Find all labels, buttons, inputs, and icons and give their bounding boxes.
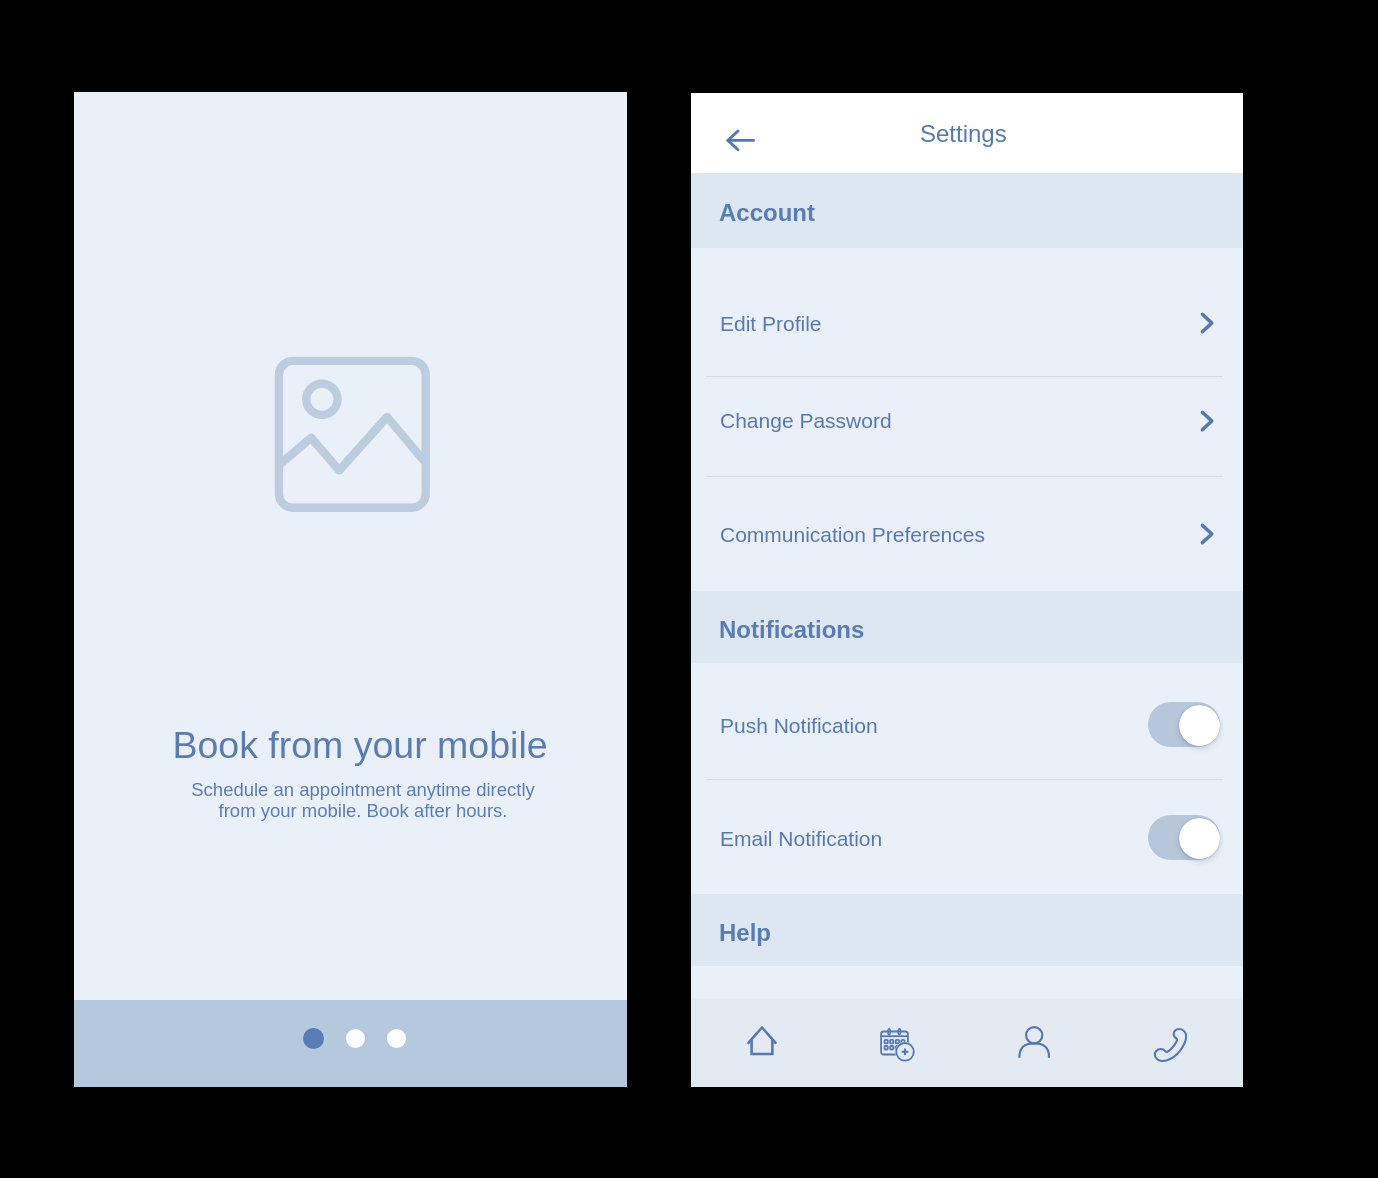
staticText: Schedule an appointment anytime directly…: [191, 779, 535, 821]
staticText: Book from your mobile: [172, 724, 548, 766]
button[interactable]: Book appointment: [829, 999, 967, 1087]
button[interactable]: Edit Profile: [691, 248, 1243, 376]
button[interactable]: Page 2: [346, 1029, 365, 1048]
staticText: Push Notification: [720, 714, 878, 737]
staticText: Edit Profile: [720, 312, 822, 335]
staticText: Account: [719, 199, 815, 226]
staticText: Notifications: [719, 616, 865, 643]
staticText: Settings: [920, 120, 1007, 147]
button[interactable]: Home: [691, 999, 829, 1087]
button[interactable]: Page 3: [387, 1029, 406, 1048]
button[interactable]: Back: [715, 113, 767, 165]
button[interactable]: Communication Preferences: [691, 477, 1243, 591]
button[interactable]: Push Notification: [1148, 702, 1220, 748]
button[interactable]: Email Notification: [691, 780, 1243, 894]
button[interactable]: Email Notification: [1148, 815, 1220, 861]
staticText: Communication Preferences: [720, 523, 985, 546]
staticText: Help: [719, 919, 772, 946]
staticText: Email Notification: [720, 827, 883, 850]
staticText: Change Password: [720, 409, 892, 432]
button[interactable]: Call: [1105, 999, 1243, 1087]
button[interactable]: Page 1: [303, 1028, 324, 1049]
button[interactable]: Profile: [967, 999, 1105, 1087]
button[interactable]: Change Password: [691, 377, 1243, 476]
button[interactable]: Push Notification: [691, 663, 1243, 779]
